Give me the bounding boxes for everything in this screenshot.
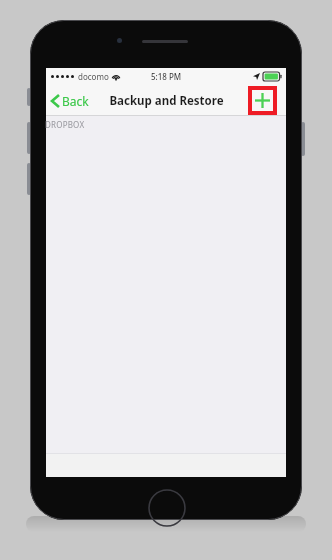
- staticText: Back: [62, 93, 89, 109]
- staticText: DROPBOX: [45, 119, 85, 130]
- staticText: docomo: [78, 71, 109, 82]
- button[interactable]: Back: [46, 85, 97, 116]
- staticText: 5:18 PM: [151, 71, 182, 82]
- button[interactable]: Add backup: [248, 86, 277, 115]
- staticText: Backup and Restore: [109, 93, 224, 109]
